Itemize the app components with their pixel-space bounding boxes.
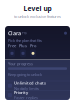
button[interactable]: Priority	[5, 91, 70, 100]
staticText: Priority	[14, 90, 28, 95]
staticText: Pro	[30, 43, 36, 48]
staticText: Pro	[22, 31, 27, 35]
staticText: to unlock exclusive features	[14, 14, 61, 19]
button[interactable]: Pro	[30, 43, 36, 57]
button[interactable]: Unlimited chats	[5, 81, 70, 90]
staticText: Faster replies	[14, 95, 38, 100]
staticText: Clara	[8, 30, 21, 37]
staticText: Free	[8, 43, 16, 48]
staticText: Keep going to unlock	[8, 72, 42, 77]
staticText: Level up	[23, 4, 51, 13]
button[interactable]: Plus	[19, 43, 27, 57]
staticText: Your progress	[8, 61, 33, 66]
button[interactable]: Close	[64, 32, 67, 35]
staticText: Pick the plan that fits	[8, 38, 42, 43]
staticText: No daily limits	[14, 86, 39, 91]
staticText: Plus	[19, 43, 27, 48]
staticText: Unlimited chats	[14, 80, 46, 86]
button[interactable]: Free	[8, 43, 16, 57]
